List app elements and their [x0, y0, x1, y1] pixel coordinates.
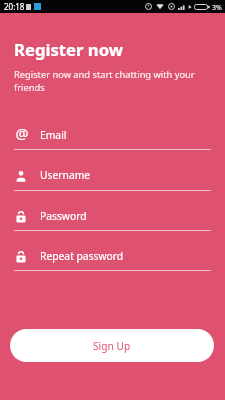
staticText: Password: [40, 209, 87, 223]
staticText: Username: [40, 168, 91, 182]
staticText: Register now and start chatting with you…: [14, 68, 201, 94]
staticText: Sign Up: [93, 339, 131, 353]
button[interactable]: Repeat password: [14, 247, 211, 271]
staticText: @: [15, 123, 29, 143]
staticText: Email: [40, 128, 67, 142]
button[interactable]: Password: [14, 207, 211, 231]
button[interactable]: Sign Up: [10, 329, 214, 362]
button[interactable]: Username: [14, 166, 211, 190]
staticText: Repeat password: [40, 249, 124, 263]
button[interactable]: @: [14, 126, 211, 150]
staticText: 20:18: [4, 1, 25, 12]
staticText: 3%: [212, 3, 222, 13]
staticText: Register now: [14, 38, 124, 61]
